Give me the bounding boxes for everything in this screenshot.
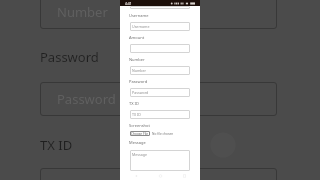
button[interactable]: Message (130, 150, 190, 171)
staticText: TX ID (132, 112, 141, 117)
button[interactable]: Password (40, 82, 277, 116)
staticText: Password (132, 90, 149, 95)
button[interactable]: Choose File (130, 131, 150, 136)
staticText: Amount (129, 35, 145, 40)
button[interactable]: Username (130, 22, 190, 31)
staticText: Password (40, 48, 99, 66)
staticText: Number (129, 57, 145, 62)
staticText: TX ID (129, 101, 139, 106)
staticText: Message (129, 140, 146, 145)
staticText: No file chosen (152, 132, 174, 136)
staticText: Message (132, 152, 147, 157)
staticText: Number (132, 68, 147, 73)
staticText: Password (57, 90, 116, 108)
staticText: Screenshot (129, 123, 150, 128)
staticText: Password (129, 79, 148, 84)
staticText: 4:41 (125, 1, 132, 6)
button[interactable] (130, 44, 190, 53)
button[interactable]: TX ID (130, 110, 190, 119)
button[interactable]: Number (40, 0, 277, 29)
staticText: Choose File (131, 132, 149, 136)
staticText: Username (132, 24, 150, 29)
staticText: Number (57, 3, 108, 21)
button[interactable] (40, 168, 277, 180)
staticText: TX ID (40, 136, 73, 154)
button[interactable]: Password (130, 88, 190, 97)
staticText: Username (129, 13, 149, 18)
button[interactable]: Number (130, 66, 190, 75)
